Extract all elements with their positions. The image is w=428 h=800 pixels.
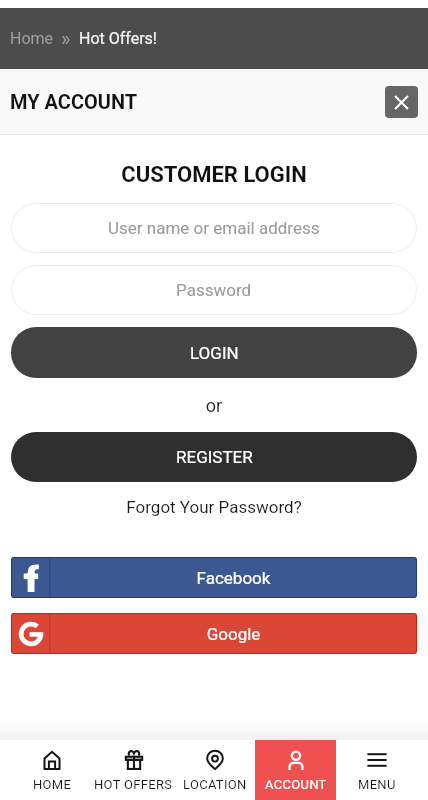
staticText: LOCATION <box>183 777 247 792</box>
staticText: Hot Offers! <box>79 29 157 48</box>
button[interactable]: Google <box>11 613 417 654</box>
staticText: User name or email address <box>108 218 320 238</box>
staticText: Password <box>176 280 252 300</box>
button[interactable]: Close <box>385 86 418 118</box>
staticText: or <box>0 395 428 416</box>
button[interactable]: LOCATION <box>174 740 255 800</box>
staticText: » <box>61 27 71 50</box>
button[interactable]: ACCOUNT <box>255 740 336 800</box>
staticText: Google <box>50 624 417 644</box>
button[interactable]: User name or email address <box>11 203 417 253</box>
button[interactable]: MENU <box>336 740 417 800</box>
button[interactable]: Facebook <box>11 557 417 598</box>
staticText: ACCOUNT <box>265 777 327 792</box>
staticText: CUSTOMER LOGIN <box>0 162 428 188</box>
button[interactable]: REGISTER <box>11 432 417 482</box>
button[interactable]: HOME <box>11 740 93 800</box>
staticText: Facebook <box>50 568 417 588</box>
button[interactable]: HOT OFFERS <box>93 740 174 800</box>
staticText: HOT OFFERS <box>94 777 173 792</box>
staticText: MENU <box>358 777 396 792</box>
button[interactable]: Forgot Your Password? <box>0 497 428 517</box>
staticText: MY ACCOUNT <box>10 90 138 113</box>
staticText: HOME <box>33 777 72 792</box>
button[interactable]: LOGIN <box>11 327 417 378</box>
staticText: LOGIN <box>190 343 239 363</box>
staticText: REGISTER <box>176 447 253 467</box>
button[interactable]: Password <box>11 265 417 315</box>
staticText: Home <box>10 29 54 48</box>
